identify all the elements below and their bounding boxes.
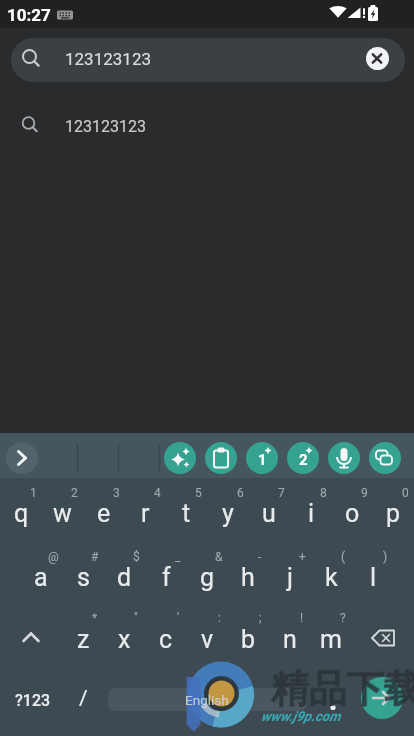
button[interactable] bbox=[352, 598, 414, 658]
staticText: 5 bbox=[195, 486, 202, 500]
button[interactable] bbox=[104, 598, 145, 658]
staticText: g bbox=[200, 563, 215, 592]
button[interactable] bbox=[207, 478, 248, 538]
staticText: $ bbox=[133, 550, 140, 564]
staticText: 7 bbox=[278, 486, 285, 500]
staticText: 3 bbox=[113, 486, 120, 500]
button[interactable] bbox=[352, 538, 393, 598]
staticText: t bbox=[182, 499, 191, 528]
button[interactable] bbox=[373, 478, 414, 538]
button[interactable] bbox=[62, 538, 103, 598]
staticText: m bbox=[320, 625, 342, 654]
staticText: c bbox=[159, 625, 173, 654]
staticText: 4 bbox=[154, 486, 161, 500]
staticText: English bbox=[185, 692, 229, 708]
button[interactable] bbox=[310, 668, 351, 728]
staticText: 0 bbox=[402, 486, 409, 500]
button[interactable] bbox=[164, 442, 196, 474]
staticText: v bbox=[201, 625, 214, 654]
staticText: q bbox=[14, 499, 29, 528]
button[interactable] bbox=[0, 96, 414, 152]
staticText: 2 bbox=[71, 486, 78, 500]
staticText: @ bbox=[48, 550, 59, 564]
staticText: English bbox=[185, 692, 229, 708]
staticText: p bbox=[386, 499, 401, 528]
button[interactable] bbox=[361, 677, 403, 719]
staticText: a bbox=[34, 563, 48, 592]
button[interactable] bbox=[11, 38, 405, 82]
button[interactable] bbox=[62, 598, 103, 658]
button[interactable] bbox=[228, 598, 269, 658]
staticText: 123123123 bbox=[65, 49, 151, 69]
button[interactable] bbox=[290, 478, 331, 538]
button[interactable] bbox=[328, 442, 360, 474]
button[interactable] bbox=[108, 688, 307, 711]
staticText: ) bbox=[383, 550, 388, 564]
staticText: x bbox=[118, 625, 131, 654]
button[interactable] bbox=[21, 538, 62, 598]
staticText: 2 bbox=[299, 451, 308, 469]
staticText: 6 bbox=[237, 486, 244, 500]
button[interactable] bbox=[186, 538, 227, 598]
staticText: " bbox=[134, 611, 138, 625]
button[interactable] bbox=[186, 598, 227, 658]
staticText: * bbox=[92, 611, 98, 625]
staticText: ' bbox=[177, 611, 180, 625]
button[interactable] bbox=[62, 668, 103, 728]
button[interactable] bbox=[228, 538, 269, 598]
button[interactable] bbox=[366, 47, 389, 70]
staticText: 123123123 bbox=[65, 117, 146, 136]
staticText: + bbox=[299, 550, 306, 564]
staticText: f bbox=[162, 563, 171, 592]
button[interactable] bbox=[104, 538, 145, 598]
button[interactable] bbox=[269, 538, 310, 598]
staticText: / bbox=[79, 686, 88, 711]
staticText: ! bbox=[300, 611, 304, 625]
staticText: & bbox=[215, 550, 223, 564]
staticText: n bbox=[283, 625, 297, 654]
button[interactable] bbox=[311, 538, 352, 598]
staticText: u bbox=[262, 499, 276, 528]
button[interactable] bbox=[166, 478, 207, 538]
staticText: 9 bbox=[361, 486, 368, 500]
staticText: e bbox=[97, 499, 111, 528]
staticText: i bbox=[308, 499, 315, 528]
button[interactable] bbox=[0, 478, 41, 538]
staticText: 精品下载 bbox=[272, 665, 414, 712]
button[interactable] bbox=[269, 598, 310, 658]
button[interactable] bbox=[311, 598, 352, 658]
staticText: ?123 bbox=[15, 691, 51, 710]
staticText: d bbox=[117, 563, 132, 592]
staticText: r bbox=[141, 499, 150, 528]
staticText: ; bbox=[259, 611, 262, 625]
button[interactable] bbox=[205, 442, 237, 474]
staticText: z bbox=[77, 625, 90, 654]
staticText: j bbox=[287, 563, 293, 592]
button[interactable] bbox=[246, 442, 278, 474]
staticText: o bbox=[345, 499, 360, 528]
button[interactable] bbox=[287, 442, 319, 474]
button[interactable] bbox=[124, 478, 165, 538]
staticText: - bbox=[258, 550, 262, 564]
staticText: 1 bbox=[30, 486, 37, 500]
button[interactable] bbox=[145, 538, 186, 598]
staticText: _ bbox=[175, 550, 181, 564]
button[interactable] bbox=[248, 478, 289, 538]
staticText: h bbox=[241, 563, 255, 592]
staticText: # bbox=[91, 550, 99, 564]
button[interactable] bbox=[0, 668, 62, 728]
button[interactable] bbox=[145, 598, 186, 658]
button[interactable] bbox=[0, 598, 62, 658]
button[interactable] bbox=[41, 478, 82, 538]
staticText: 8 bbox=[320, 486, 327, 500]
staticText: y bbox=[222, 499, 234, 528]
button[interactable] bbox=[6, 442, 38, 474]
staticText: w bbox=[53, 499, 72, 528]
button[interactable] bbox=[83, 478, 124, 538]
button[interactable] bbox=[331, 478, 372, 538]
staticText: ( bbox=[341, 550, 346, 564]
button[interactable] bbox=[369, 442, 401, 474]
staticText: k bbox=[325, 563, 338, 592]
staticText: l bbox=[370, 563, 377, 592]
staticText: 1 bbox=[258, 451, 267, 469]
